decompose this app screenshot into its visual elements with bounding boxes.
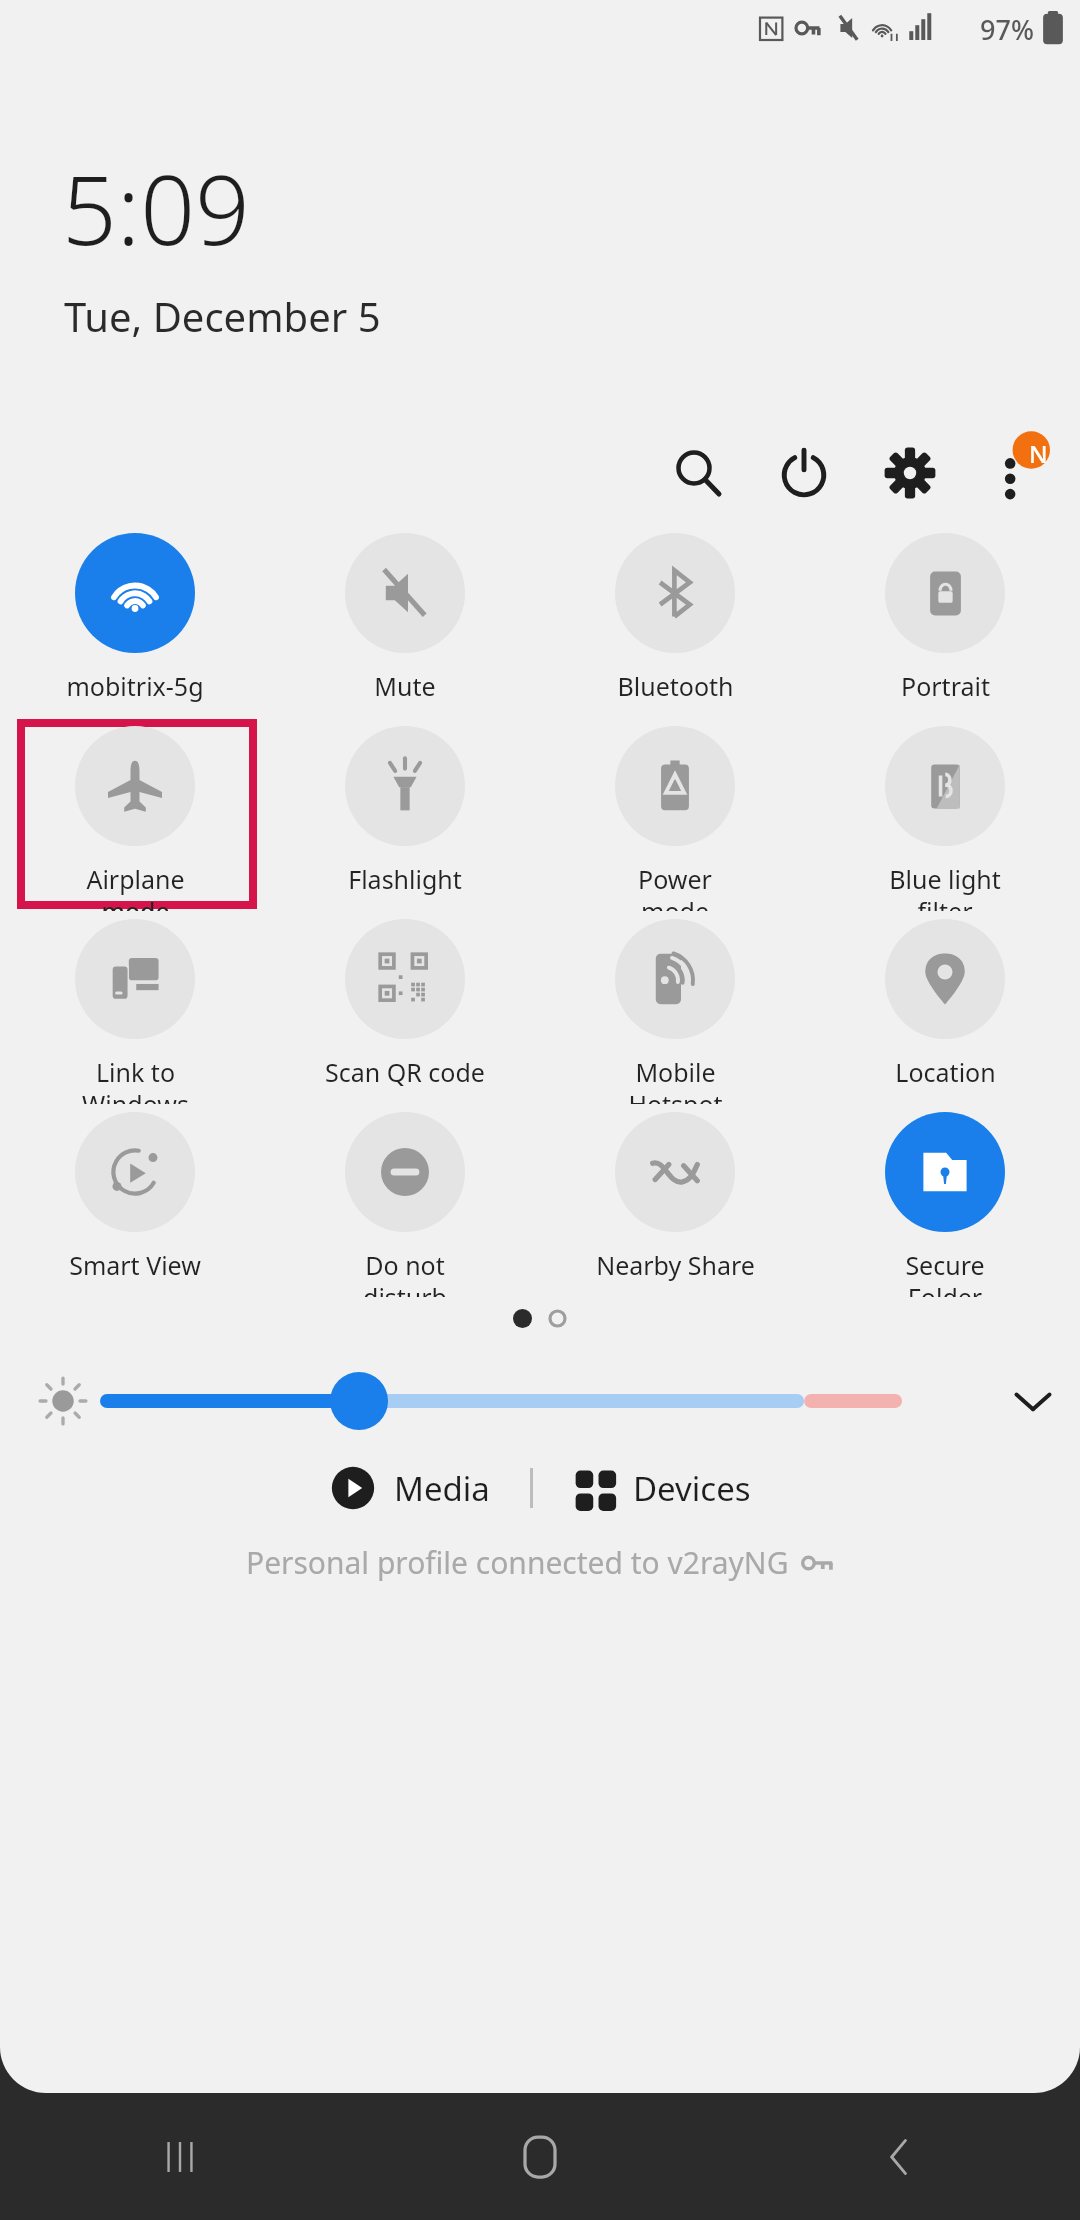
staticText: Scan QR code [325,1055,485,1089]
staticText: Blue light filter [889,862,1001,911]
staticText: mobitrix-5g [66,669,204,703]
staticText: Do not disturb [363,1248,447,1297]
staticText: Airplane mode [86,862,185,911]
staticText: Bluetooth [617,669,734,703]
button[interactable]: mobitrix-5g [0,525,270,703]
button[interactable] [548,1309,567,1328]
button[interactable]: Blue light filter [810,718,1080,911]
staticText: Personal profile connected to v2rayNG [246,1542,789,1583]
staticText: Power mode [638,862,712,911]
button[interactable] [513,1309,532,1328]
button[interactable]: Smart View [0,1104,270,1282]
staticText: 97% [980,11,1034,48]
button[interactable]: Devices [559,1458,765,1519]
button[interactable]: Mobile Hotspot [540,911,810,1104]
button[interactable]: Flashlight [270,718,540,896]
button[interactable]: Link to Windows [0,911,270,1104]
button[interactable]: Scan QR code [270,911,540,1089]
staticText: Tue, December 5 [64,289,381,343]
staticText: Link to Windows [82,1055,189,1104]
button[interactable]: Home [360,2093,720,2220]
button[interactable]: Power mode [540,718,810,911]
staticText: Nearby Share [596,1248,755,1282]
staticText: Airplane mode [86,862,185,911]
button[interactable]: Nearby Share [540,1104,810,1282]
button[interactable]: Media [316,1457,504,1519]
button[interactable]: Mute [270,525,540,703]
staticText: Location [895,1055,996,1089]
staticText: Secure Folder [905,1248,985,1297]
staticText: Devices [633,1466,751,1511]
staticText: Mobile Hotspot [628,1055,723,1104]
button[interactable]: Airplane mode [0,718,270,911]
button[interactable]: Search [650,425,746,521]
staticText: 5:09 [62,142,250,273]
button[interactable]: Location [810,911,1080,1089]
button[interactable]: Settings [862,425,958,521]
button[interactable]: Do not disturb [270,1104,540,1297]
staticText: Portrait [901,669,990,703]
button[interactable]: Back [720,2093,1080,2220]
staticText: Media [394,1466,490,1511]
staticText: Flashlight [348,862,462,896]
button[interactable]: Airplane mode [0,718,270,911]
button[interactable]: Recent apps [0,2093,360,2220]
button[interactable]: Expand [986,1358,1080,1444]
button[interactable]: Portrait [810,525,1080,703]
button[interactable]: Secure Folder [810,1104,1080,1297]
staticText: Smart View [69,1248,201,1282]
button[interactable]: Power off [756,425,852,521]
staticText: Mute [374,669,436,703]
staticText: N [1029,437,1048,470]
button[interactable]: More options [966,425,1062,521]
button[interactable]: Bluetooth [540,525,810,703]
